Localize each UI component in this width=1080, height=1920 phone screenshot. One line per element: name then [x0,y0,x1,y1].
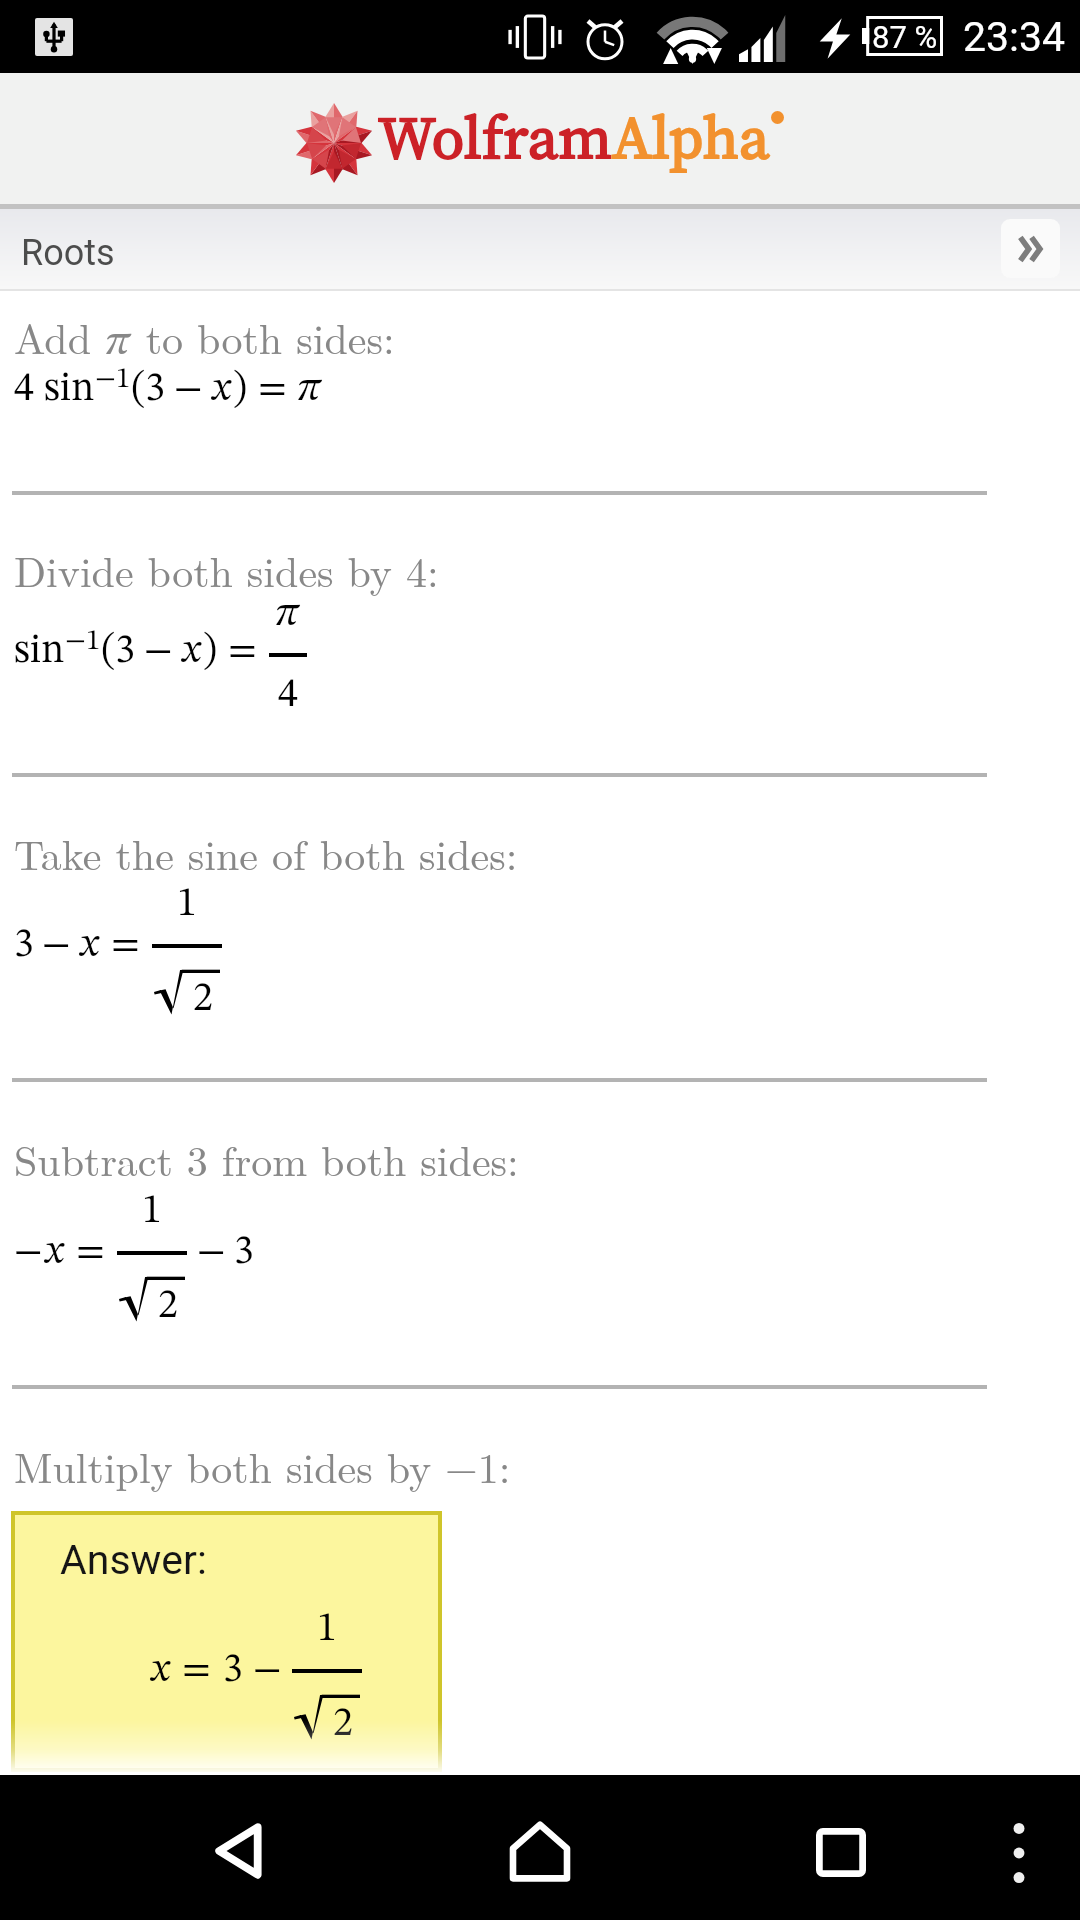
staticText: (3 [101,632,136,672]
button[interactable]: Expand section [1001,219,1060,278]
staticText: (3 [131,370,166,410]
staticText: sin [14,632,65,672]
staticText: 2 [333,1705,353,1745]
staticText: 𝑥 [43,1233,66,1273]
staticText: 4 [278,676,298,716]
staticText: 4 [14,370,34,410]
staticText: 23:34 [963,13,1066,61]
staticText: 𝜋 [297,370,323,410]
staticText: − [197,1233,226,1273]
staticText: 𝑥 [210,370,233,410]
button[interactable]: Roots [0,209,1080,289]
staticText: 1 [317,1610,337,1650]
staticText: Subtract 3 from both sides: [14,1129,519,1189]
staticText: 1 [177,885,197,925]
staticText: − [42,926,71,966]
button[interactable]: Home [480,1775,600,1920]
staticText: Multiply both sides by −1: [14,1436,511,1496]
staticText: Take the sine of both sides: [14,823,518,883]
staticText: WolframAlpha [378,96,770,178]
staticText: = [228,632,257,672]
staticText: − [14,1233,43,1273]
staticText: = [76,1233,105,1273]
staticText: Roots [21,232,115,274]
staticText: 𝑥 [149,1651,172,1691]
button[interactable]: Recent apps [781,1775,901,1920]
staticText: 𝑥 [78,926,101,966]
staticText: 3 [14,926,34,966]
staticText: 1 [142,1192,162,1232]
staticText: 𝑥 [180,632,203,672]
staticText: 2 [158,1287,178,1327]
staticText: 2 [193,980,213,1020]
staticText: Divide both sides by 4: [14,540,439,600]
staticText: ) [203,632,218,672]
staticText: 3 [234,1233,254,1273]
button[interactable]: Back [180,1775,300,1920]
staticText: = [182,1651,211,1691]
button[interactable]: More options [969,1775,1069,1920]
staticText: −1 [65,627,101,656]
staticText: Answer: [60,1536,207,1584]
staticText: − [144,632,173,672]
staticText: 𝜋 [275,595,301,635]
staticText: sin [44,370,95,410]
staticText: Add 𝜋 to both sides: [14,307,395,367]
button[interactable]: Answer: [15,1515,438,1768]
staticText: = [258,370,287,410]
staticText: −1 [95,365,131,394]
staticText: = [111,926,140,966]
staticText: − [253,1651,282,1691]
staticText: ) [233,370,248,410]
staticText: 87 % [872,19,938,55]
staticText: − [174,370,203,410]
staticText: 3 [223,1651,243,1691]
